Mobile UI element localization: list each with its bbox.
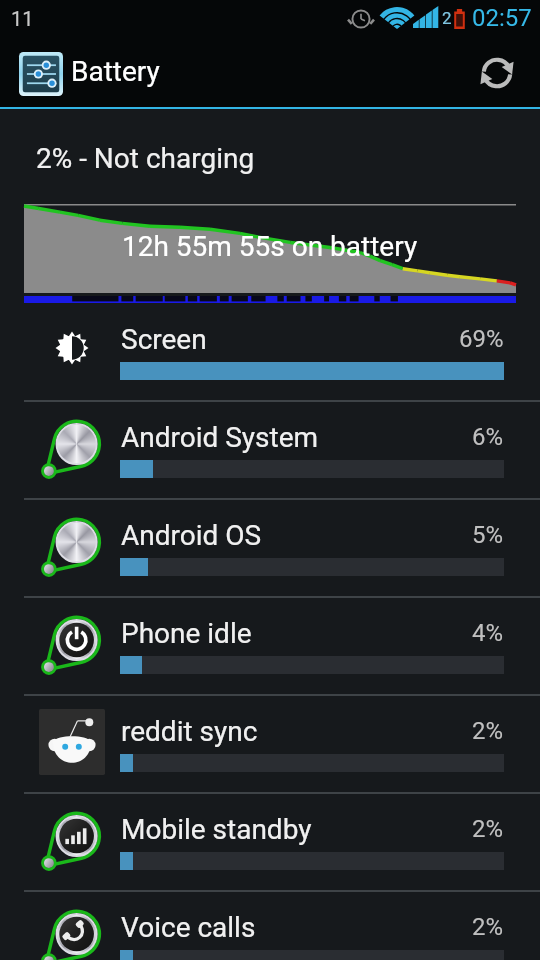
button[interactable]: Refresh: [470, 38, 540, 107]
staticText: 2% - Not charging: [36, 142, 255, 175]
staticText: 2%: [472, 913, 504, 941]
button[interactable]: Voice calls: [0, 892, 540, 960]
staticText: 02:57: [472, 4, 532, 32]
staticText: 2: [442, 8, 452, 28]
staticText: Voice calls: [121, 911, 256, 944]
staticText: Android OS: [121, 519, 262, 552]
button[interactable]: Android System: [0, 402, 540, 498]
staticText: Screen: [121, 323, 207, 356]
staticText: Battery: [71, 55, 160, 88]
button[interactable]: Screen: [0, 304, 540, 400]
staticText: 4%: [472, 619, 504, 647]
staticText: 6%: [472, 423, 504, 451]
staticText: 5%: [472, 521, 504, 549]
staticText: Android System: [121, 421, 319, 454]
staticText: 11: [11, 7, 34, 30]
button[interactable]: Android OS: [0, 500, 540, 596]
staticText: 2%: [472, 815, 504, 843]
staticText: 69%: [459, 325, 504, 353]
staticText: 12h 55m 55s on battery: [122, 230, 418, 263]
staticText: Mobile standby: [121, 813, 312, 846]
button[interactable]: reddit sync: [0, 696, 540, 792]
staticText: Phone idle: [121, 617, 252, 650]
button[interactable]: Mobile standby: [0, 794, 540, 890]
staticText: 2%: [472, 717, 504, 745]
staticText: reddit sync: [121, 715, 258, 748]
button[interactable]: Phone idle: [0, 598, 540, 694]
